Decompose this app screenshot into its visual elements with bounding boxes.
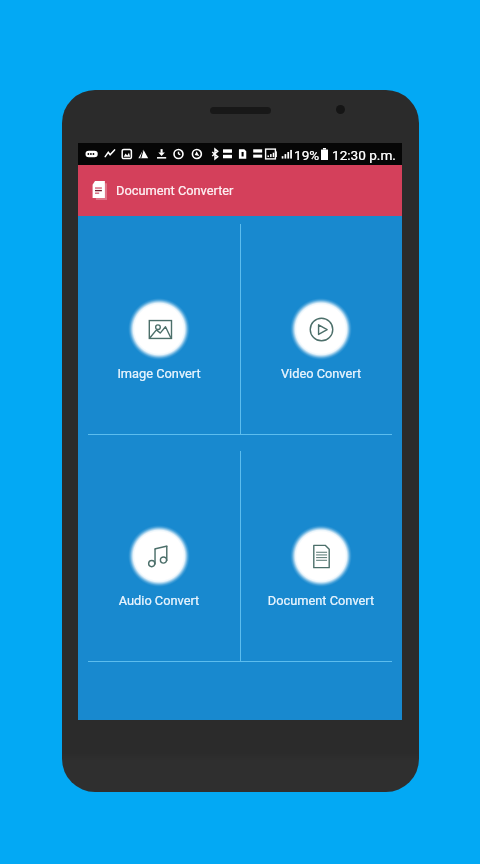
- staticText: Document Convert: [240, 593, 402, 608]
- staticText: Image Convert: [78, 366, 240, 381]
- button[interactable]: Document Converter: [78, 165, 402, 216]
- staticText: 12:30 p.m.: [332, 147, 396, 163]
- button[interactable]: Audio Convert: [78, 434, 240, 661]
- button[interactable]: Image Convert: [78, 216, 240, 434]
- staticText: Audio Convert: [78, 593, 240, 608]
- staticText: 19%: [294, 147, 320, 163]
- staticText: Document Converter: [116, 183, 234, 198]
- button[interactable]: Video Convert: [240, 216, 402, 434]
- staticText: Video Convert: [240, 366, 402, 381]
- button[interactable]: Document Convert: [240, 434, 402, 661]
